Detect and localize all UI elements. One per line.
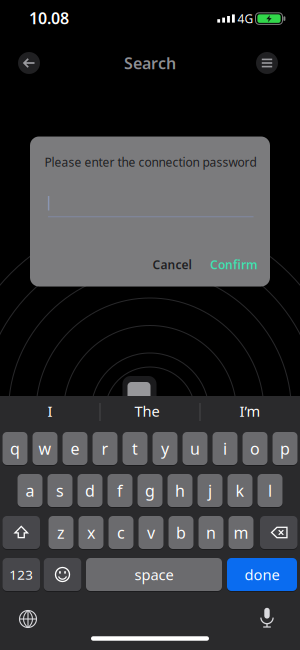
button[interactable]: Password (48, 188, 254, 218)
staticText: c (117, 522, 125, 543)
staticText: k (235, 480, 244, 501)
staticText: p (280, 438, 290, 459)
staticText: h (175, 480, 185, 501)
button[interactable]: n (198, 515, 223, 549)
staticText: q (10, 438, 20, 459)
staticText: a (25, 480, 34, 501)
button[interactable]: Delete (260, 515, 297, 549)
staticText: x (87, 522, 95, 543)
staticText: d (85, 480, 95, 501)
button[interactable]: u (182, 431, 207, 465)
staticText: Cancel (152, 256, 191, 272)
button[interactable]: Dictate (256, 607, 278, 629)
staticText: e (70, 438, 79, 459)
staticText: space (134, 565, 173, 584)
staticText: l (268, 480, 272, 501)
button[interactable]: t (122, 431, 147, 465)
staticText: g (145, 480, 155, 501)
staticText: Please enter the connection password (44, 154, 256, 170)
staticText: o (250, 438, 260, 459)
staticText: b (176, 522, 186, 543)
button[interactable]: g (137, 473, 162, 507)
button[interactable]: c (108, 515, 133, 549)
button[interactable]: x (78, 515, 103, 549)
button[interactable]: I (5, 397, 95, 425)
staticText: 123 (9, 566, 33, 583)
button[interactable]: a (17, 473, 42, 507)
staticText: The (134, 401, 159, 421)
button[interactable]: Menu (256, 52, 278, 74)
staticText: Search (124, 52, 176, 74)
staticText: v (147, 522, 155, 543)
staticText: 4G (237, 10, 253, 26)
button[interactable]: s (47, 473, 72, 507)
button[interactable]: Emoji (44, 557, 81, 591)
staticText: I (47, 401, 52, 421)
button[interactable]: p (272, 431, 297, 465)
button[interactable]: k (227, 473, 252, 507)
staticText: r (101, 438, 108, 459)
button[interactable]: z (48, 515, 73, 549)
button[interactable]: i (212, 431, 237, 465)
button[interactable]: e (62, 431, 87, 465)
button[interactable]: f (107, 473, 132, 507)
button[interactable]: done (227, 557, 297, 591)
staticText: j (208, 480, 212, 501)
button[interactable]: b (168, 515, 193, 549)
staticText: y (161, 438, 169, 459)
button[interactable]: w (32, 431, 57, 465)
staticText: w (38, 438, 51, 459)
staticText: s (56, 480, 64, 501)
staticText: done (244, 565, 279, 584)
staticText: z (57, 522, 65, 543)
button[interactable]: h (167, 473, 192, 507)
button[interactable]: m (228, 515, 253, 549)
button[interactable]: I’m (205, 397, 295, 425)
staticText: u (190, 438, 200, 459)
button[interactable]: The (102, 397, 192, 425)
button[interactable]: Confirm (201, 252, 267, 276)
button[interactable]: d (77, 473, 102, 507)
button[interactable]: o (242, 431, 267, 465)
staticText: f (117, 480, 123, 501)
staticText: i (223, 438, 227, 459)
button[interactable]: Cancel (147, 252, 197, 276)
staticText: I’m (239, 401, 260, 421)
button[interactable]: 123 (2, 557, 40, 591)
staticText: n (206, 522, 216, 543)
button[interactable]: Switch keyboard (17, 608, 39, 630)
button[interactable]: v (138, 515, 163, 549)
staticText: t (132, 438, 138, 459)
staticText: 10.08 (29, 7, 69, 29)
staticText: Confirm (210, 256, 258, 272)
button[interactable]: r (92, 431, 117, 465)
button[interactable]: j (197, 473, 222, 507)
button[interactable]: q (2, 431, 27, 465)
button[interactable]: l (257, 473, 282, 507)
button[interactable]: Shift (2, 515, 40, 549)
button[interactable]: y (152, 431, 177, 465)
staticText: m (233, 522, 248, 543)
button[interactable]: Back (18, 52, 40, 74)
button[interactable]: space (86, 557, 222, 591)
